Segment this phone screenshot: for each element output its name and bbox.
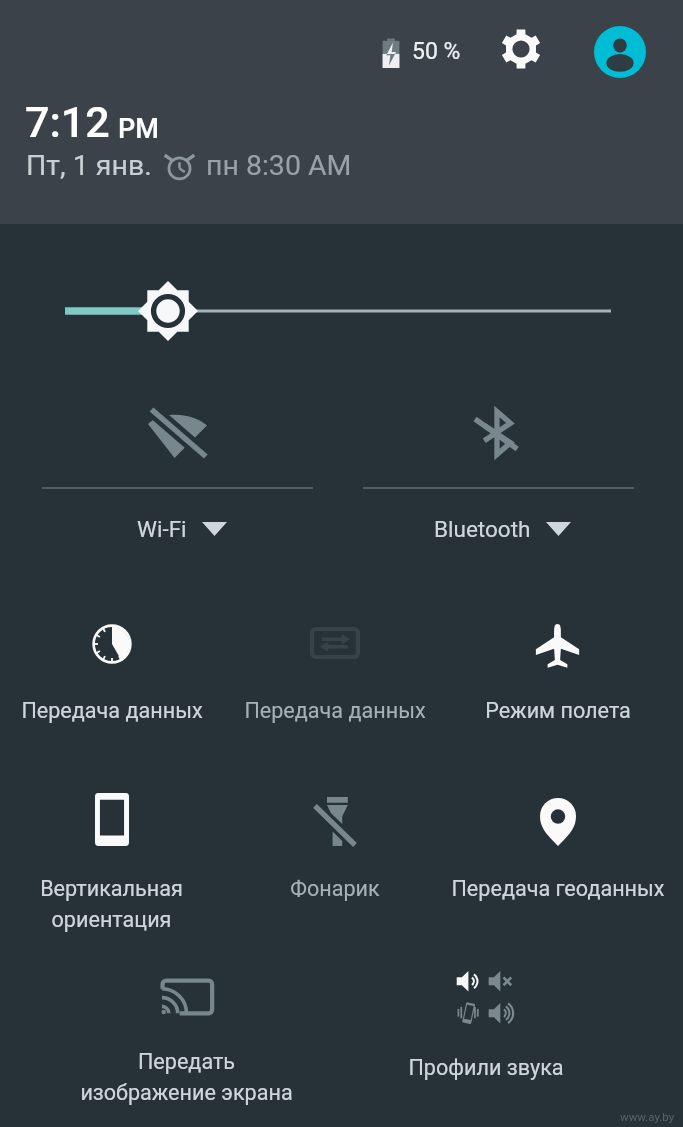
button[interactable]: Передача данных xyxy=(0,612,223,723)
button[interactable]: Wi-Fi xyxy=(42,405,313,542)
staticText: пн 8:30 AM xyxy=(206,149,352,182)
staticText: Передача данных xyxy=(244,698,426,723)
staticText: Пт, 1 янв. xyxy=(26,149,152,182)
staticText: Фонарик xyxy=(290,876,380,901)
button[interactable]: Bluetooth xyxy=(363,405,634,542)
staticText: 50 % xyxy=(412,38,461,65)
staticText: PM xyxy=(118,113,159,145)
button[interactable]: User profile xyxy=(594,26,646,78)
button[interactable]: Передача геоданных xyxy=(446,790,669,901)
button[interactable]: Settings xyxy=(492,20,550,78)
button[interactable]: Профили звука xyxy=(374,963,597,1080)
staticText: Профили звука xyxy=(408,1055,564,1080)
staticText: Передача геоданных xyxy=(451,876,665,901)
button[interactable]: Фонарик xyxy=(223,790,446,901)
staticText: Режим полета xyxy=(485,698,631,723)
button[interactable]: Передача данных xyxy=(223,612,446,723)
staticText: Передать изображение экрана xyxy=(80,1049,293,1105)
staticText: Передача данных xyxy=(21,698,203,723)
button[interactable]: Brightness xyxy=(0,285,683,337)
button[interactable]: Вертикальная ориентация xyxy=(0,790,223,932)
staticText: Вертикальная ориентация xyxy=(40,876,183,932)
staticText: Bluetooth xyxy=(434,516,531,542)
staticText: 7:12 xyxy=(25,97,110,147)
staticText: www.ay.by xyxy=(620,1110,675,1123)
button[interactable]: Передать изображение экрана xyxy=(75,963,298,1105)
staticText: Wi-Fi xyxy=(137,516,187,542)
button[interactable]: Режим полета xyxy=(446,612,669,723)
